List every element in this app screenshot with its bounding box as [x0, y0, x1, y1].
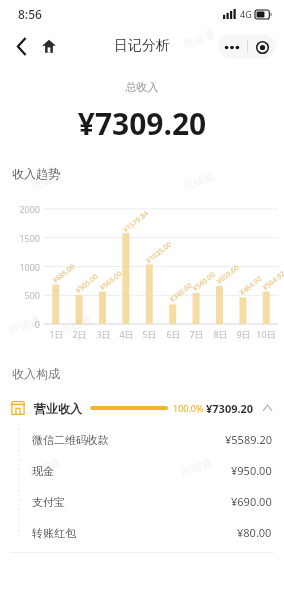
staticText: 商铺通 [7, 313, 42, 337]
staticText: 4G [240, 8, 252, 20]
staticText: 1日 [49, 328, 64, 340]
staticText: 8:56 [18, 6, 42, 22]
staticText: 10日 [256, 328, 276, 340]
staticText: 微信二维码收款 [32, 433, 109, 447]
staticText: 2000 [19, 203, 40, 215]
staticText: 500 [24, 289, 40, 301]
staticText: 1500 [19, 232, 40, 244]
staticText: ¥5589.20 [225, 432, 272, 447]
button[interactable]: 支付宝 [0, 486, 284, 517]
other: Close [250, 35, 274, 59]
staticText: ¥340.00 [168, 281, 194, 305]
other: Collapse [260, 401, 274, 415]
staticText: 商铺通 [179, 455, 214, 479]
staticText: ¥505.00 [74, 272, 100, 296]
staticText: 商铺通 [181, 169, 216, 193]
staticText: ¥7309.20 [206, 401, 254, 416]
staticText: 100.0% [173, 402, 204, 414]
staticText: ¥540.00 [191, 270, 217, 294]
staticText: 商铺通 [29, 169, 64, 193]
staticText: ¥80.00 [237, 525, 272, 540]
staticText: 3日 [96, 328, 111, 340]
staticText: 收入趋势 [12, 166, 60, 181]
staticText: ¥685.00 [51, 262, 77, 286]
staticText: 总收入 [0, 80, 284, 94]
button[interactable]: 现金 [0, 455, 284, 486]
staticText: 2日 [72, 328, 87, 340]
button[interactable]: 微信二维码收款 [0, 424, 284, 455]
staticText: 现金 [32, 464, 54, 478]
staticText: 支付宝 [32, 495, 65, 509]
staticText: ¥7309.20 [0, 103, 284, 144]
staticText: ¥564.92 [261, 269, 284, 293]
other: More [220, 35, 244, 59]
button[interactable]: More [218, 34, 276, 59]
staticText: ¥659.60 [215, 263, 241, 287]
staticText: 商铺通 [59, 313, 94, 337]
staticText: 6日 [166, 328, 181, 340]
staticText: ¥464.92 [238, 274, 264, 298]
button[interactable]: 转账红包 [0, 517, 284, 548]
staticText: 4日 [119, 328, 134, 340]
staticText: ¥950.00 [231, 463, 272, 478]
staticText: ¥565.00 [98, 269, 124, 293]
button[interactable]: 营业收入 [0, 392, 284, 424]
staticText: 转账红包 [32, 526, 76, 540]
staticText: 9日 [236, 328, 251, 340]
button[interactable]: Back [8, 32, 36, 60]
staticText: 日记分析 [114, 37, 170, 55]
staticText: 营业收入 [34, 401, 82, 416]
staticText: 8日 [213, 328, 228, 340]
staticText: 5日 [142, 328, 157, 340]
staticText: 商铺通 [181, 27, 216, 51]
staticText: 0 [34, 318, 40, 330]
staticText: 7日 [189, 328, 204, 340]
staticText: ¥1035.00 [144, 240, 174, 266]
staticText: 收入构成 [12, 366, 60, 381]
button[interactable]: Home [38, 35, 60, 57]
staticText: ¥1579.84 [121, 209, 151, 235]
staticText: 1000 [19, 261, 40, 273]
staticText: ¥690.00 [231, 494, 272, 509]
staticText: 商铺通 [27, 455, 62, 479]
